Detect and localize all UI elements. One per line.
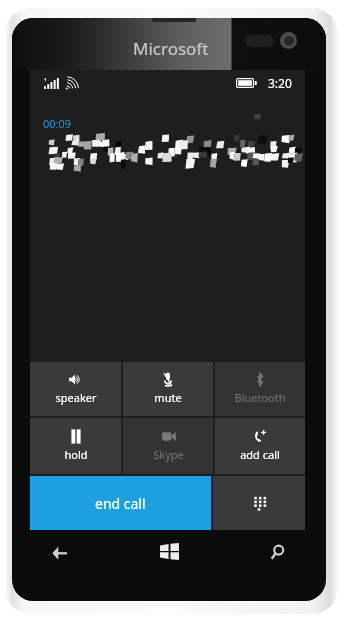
button[interactable]: Back bbox=[45, 539, 73, 567]
button[interactable]: Home bbox=[155, 537, 183, 565]
staticText: mute bbox=[154, 390, 182, 405]
button[interactable]: hold bbox=[30, 418, 121, 474]
button[interactable]: Dial pad bbox=[213, 476, 305, 530]
staticText: speaker bbox=[55, 390, 97, 405]
staticText: 00:09 bbox=[43, 116, 72, 131]
staticText: Skype bbox=[153, 447, 184, 462]
button[interactable]: Bluetooth bbox=[215, 362, 305, 416]
button[interactable]: Search bbox=[263, 538, 291, 566]
staticText: Microsoft bbox=[133, 37, 209, 60]
staticText: hold bbox=[64, 447, 88, 462]
staticText: 3:20 bbox=[268, 75, 292, 91]
button[interactable]: end call bbox=[30, 476, 211, 530]
staticText: add call bbox=[240, 447, 280, 462]
button[interactable]: add call bbox=[215, 418, 305, 474]
button[interactable]: speaker bbox=[30, 362, 121, 416]
staticText: Bluetooth bbox=[234, 390, 286, 405]
staticText: end call bbox=[95, 494, 146, 513]
button[interactable]: mute bbox=[123, 362, 213, 416]
button[interactable]: Skype bbox=[123, 418, 213, 474]
